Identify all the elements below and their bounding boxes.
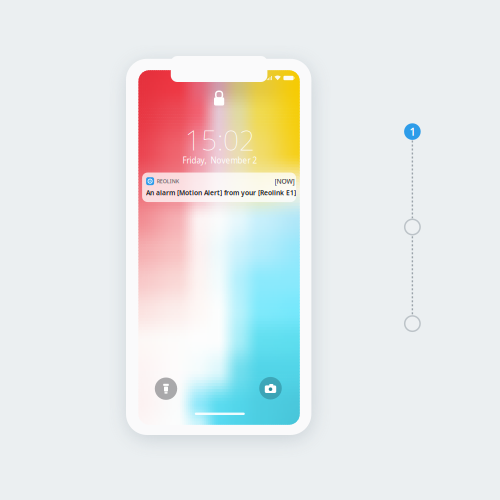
button[interactable]: REOLINK [142,173,296,202]
staticText: 1 [409,124,415,139]
staticText: 15:02 [185,121,255,158]
staticText: Friday, November 2 [183,155,258,166]
button[interactable]: Flashlight [155,377,177,400]
staticText: An alarm [Motion Alert] from your [Reoli… [146,188,296,197]
staticText: REOLINK [157,178,179,185]
staticText: [NOW] [275,177,295,186]
button[interactable]: Camera [259,377,282,399]
